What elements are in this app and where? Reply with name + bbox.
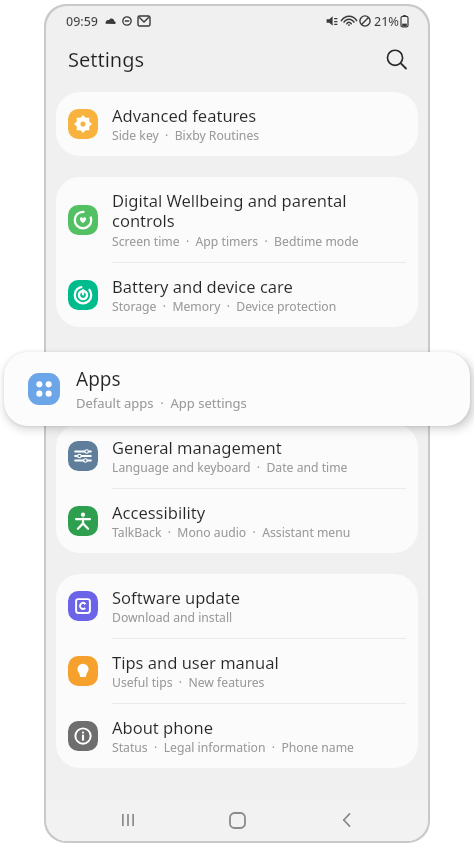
staticText: Apps — [76, 366, 121, 392]
staticText: Useful tips · New features — [112, 674, 265, 691]
staticText: 09:59 — [66, 13, 99, 30]
staticText: Accessibility — [112, 501, 206, 523]
button[interactable]: Home — [209, 799, 265, 841]
staticText: Screen time · App timers · Bedtime mode — [112, 233, 359, 250]
staticText: Storage · Memory · Device protection — [112, 298, 337, 315]
staticText: Side key · Bixby Routines — [112, 127, 260, 144]
staticText: Software update — [112, 586, 240, 608]
staticText: Advanced features — [112, 104, 257, 126]
button[interactable]: Accessibility — [56, 489, 418, 553]
staticText: Tips and user manual — [112, 651, 279, 673]
staticText: Status · Legal information · Phone name — [112, 739, 354, 756]
button[interactable]: Search — [376, 39, 416, 79]
button[interactable]: Apps — [4, 352, 470, 426]
staticText: Digital Wellbeing and parental controls — [112, 189, 404, 232]
button[interactable]: Recents — [100, 799, 156, 841]
button[interactable]: General management — [56, 424, 418, 488]
button[interactable]: Battery and device care — [56, 263, 418, 327]
button[interactable]: Advanced features — [56, 92, 418, 156]
staticText: 21% — [374, 13, 399, 30]
button[interactable]: Digital Wellbeing and parental controls — [56, 177, 418, 262]
button[interactable]: Back — [319, 799, 375, 841]
staticText: About phone — [112, 716, 213, 738]
staticText: Battery and device care — [112, 275, 293, 297]
staticText: TalkBack · Mono audio · Assistant menu — [112, 524, 351, 541]
button[interactable]: Software update — [56, 574, 418, 638]
staticText: Download and install — [112, 609, 233, 626]
button[interactable]: About phone — [56, 704, 418, 768]
button[interactable]: Tips and user manual — [56, 639, 418, 703]
staticText: Default apps · App settings — [76, 394, 247, 412]
staticText: Settings — [68, 46, 145, 73]
staticText: Language and keyboard · Date and time — [112, 459, 348, 476]
staticText: General management — [112, 436, 282, 458]
